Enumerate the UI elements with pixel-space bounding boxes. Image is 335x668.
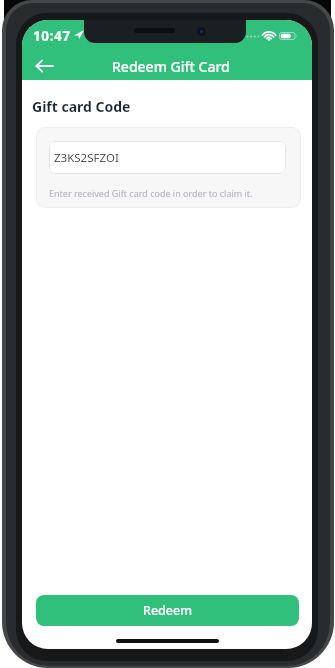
staticText: Gift card Code <box>32 97 131 116</box>
staticText: Enter received Gift card code in order t… <box>49 187 253 199</box>
staticText: Redeem <box>143 602 193 619</box>
staticText: 10:47 <box>33 27 71 43</box>
button[interactable]: Redeem <box>36 595 299 626</box>
button[interactable]: Z3KS2SFZOI <box>49 141 286 174</box>
staticText: Z3KS2SFZOI <box>54 150 119 166</box>
button[interactable] <box>28 53 60 78</box>
staticText: Redeem Gift Card <box>112 57 230 76</box>
